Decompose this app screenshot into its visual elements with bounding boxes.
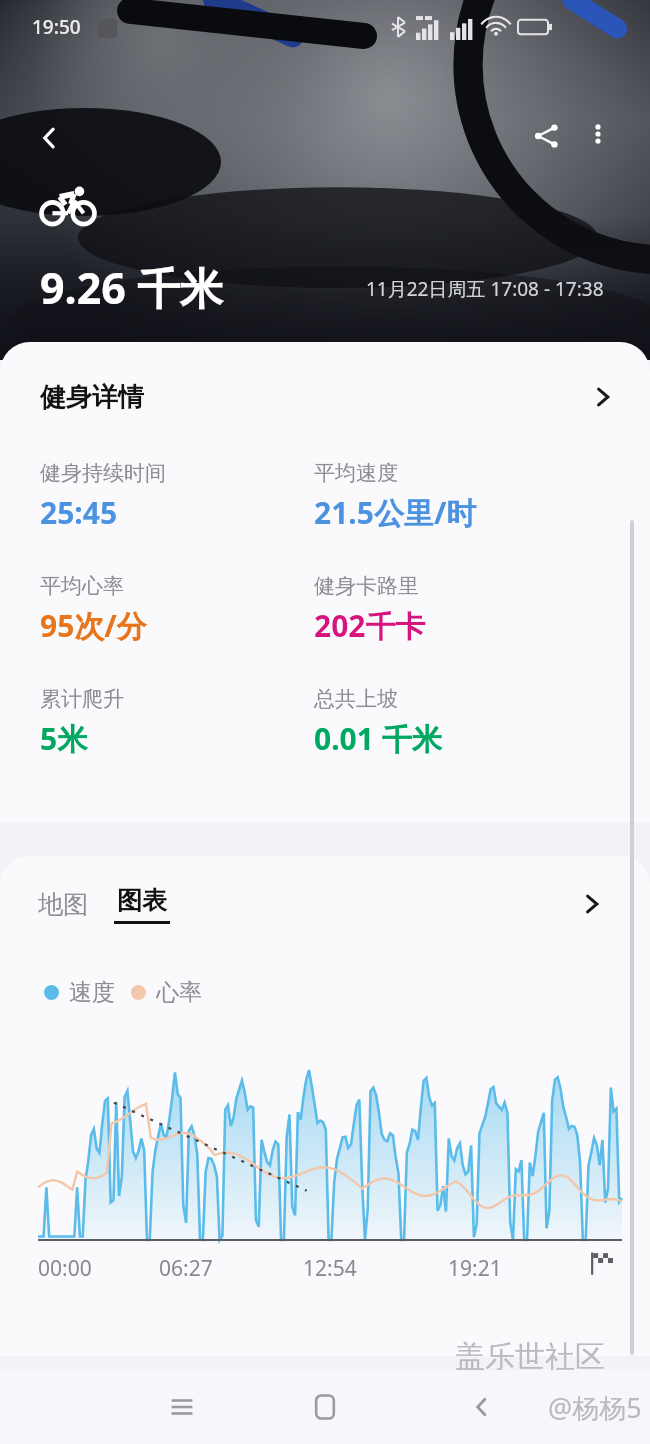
button[interactable]: Share: [518, 108, 574, 164]
staticText: 11月22日周五 17:08 - 17:38: [366, 276, 604, 302]
staticText: 202千卡: [314, 605, 426, 646]
staticText: 5米: [40, 718, 88, 759]
button[interactable]: Home: [295, 1377, 355, 1437]
staticText: 累计爬升: [40, 686, 124, 712]
staticText: 9.26 千米: [40, 258, 224, 317]
staticText: 速度: [69, 978, 115, 1007]
staticText: 健身详情: [40, 381, 144, 414]
staticText: 25:45: [40, 492, 118, 533]
staticText: @杨杨5: [548, 1389, 642, 1426]
staticText: 健身持续时间: [40, 460, 166, 486]
staticText: 0.01 千米: [314, 718, 442, 759]
staticText: 95次/分: [40, 605, 147, 646]
button[interactable]: 健身详情: [0, 342, 650, 452]
staticText: 心率: [156, 978, 202, 1007]
staticText: 盖乐世社区: [455, 1338, 605, 1376]
staticText: 地图: [38, 889, 88, 920]
staticText: 19:21: [448, 1254, 502, 1283]
button[interactable]: More options: [572, 108, 624, 160]
staticText: 健身卡路里: [314, 573, 419, 599]
staticText: 总共上坡: [314, 686, 398, 712]
button[interactable]: Recents: [152, 1377, 212, 1437]
staticText: 00:00: [38, 1254, 92, 1283]
staticText: 图表: [117, 885, 167, 916]
button[interactable]: Back: [20, 108, 80, 168]
staticText: 平均速度: [314, 460, 398, 486]
staticText: 12:54: [303, 1254, 357, 1283]
staticText: 19:50: [32, 14, 81, 40]
staticText: 06:27: [159, 1254, 213, 1283]
staticText: 平均心率: [40, 573, 124, 599]
button[interactable]: 图表: [102, 879, 182, 930]
button[interactable]: Back: [452, 1377, 512, 1437]
button[interactable]: 地图: [24, 881, 102, 928]
button[interactable]: Open chart: [570, 882, 614, 926]
staticText: 21.5公里/时: [314, 492, 477, 533]
